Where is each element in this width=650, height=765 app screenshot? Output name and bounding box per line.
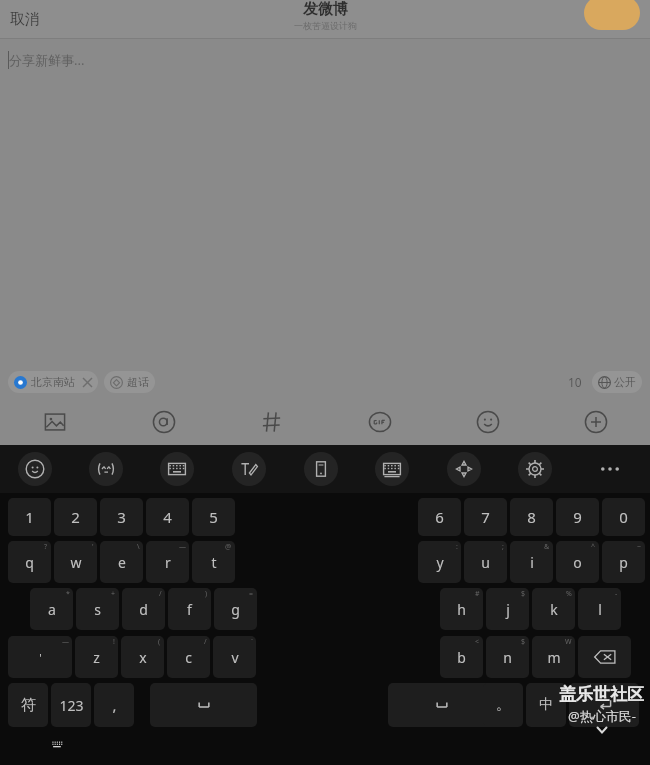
button[interactable]: s	[76, 588, 119, 630]
button[interactable]: r	[146, 541, 189, 583]
button[interactable]: k	[532, 588, 575, 630]
button[interactable]: 。	[483, 683, 523, 727]
button[interactable]: t	[192, 541, 235, 583]
staticText: ~	[637, 542, 642, 552]
button[interactable]: Mention	[109, 399, 218, 445]
button[interactable]: n	[486, 636, 529, 678]
button[interactable]: c	[167, 636, 210, 678]
button[interactable]: 取消	[0, 6, 50, 33]
staticText: k	[550, 600, 558, 619]
button[interactable]: i	[510, 541, 553, 583]
button[interactable]: g	[214, 588, 257, 630]
button[interactable]: Keyboard tool 5	[304, 452, 338, 486]
staticText: 超话	[127, 375, 149, 389]
button[interactable]: Space	[150, 683, 257, 727]
button[interactable]: j	[486, 588, 529, 630]
button[interactable]: 公开	[592, 371, 642, 393]
button[interactable]: Keyboard tool 7	[447, 452, 481, 486]
staticText: 符	[21, 696, 36, 715]
button[interactable]: More options	[592, 459, 628, 479]
button[interactable]: '	[8, 636, 72, 678]
staticText: `	[251, 637, 253, 647]
button[interactable]: Topic	[218, 399, 326, 445]
staticText: f	[187, 600, 192, 619]
button[interactable]: x	[121, 636, 164, 678]
button[interactable]: 4	[146, 498, 189, 536]
button[interactable]: f	[168, 588, 211, 630]
button[interactable]: Send	[584, 0, 640, 30]
staticText: j	[506, 600, 510, 619]
button[interactable]: 2	[54, 498, 97, 536]
button[interactable]: 超话	[104, 371, 155, 393]
staticText: y	[436, 553, 444, 572]
staticText: 6	[435, 507, 444, 527]
button[interactable]: p	[602, 541, 645, 583]
button[interactable]: l	[578, 588, 621, 630]
button[interactable]: 符	[8, 683, 48, 727]
button[interactable]: Photo	[0, 399, 109, 445]
button[interactable]: Keyboard tool 4	[232, 452, 266, 486]
staticText: c	[185, 648, 192, 667]
staticText: %	[566, 589, 572, 599]
staticText: n	[503, 648, 512, 667]
button[interactable]: Keyboard tool 2	[89, 452, 123, 486]
staticText: 9	[573, 507, 582, 527]
button[interactable]: Enter	[569, 683, 639, 727]
button[interactable]: 3	[100, 498, 143, 536]
button[interactable]: 7	[464, 498, 507, 536]
staticText: 一枚苦逼设计狗	[294, 20, 357, 31]
button[interactable]: b	[440, 636, 483, 678]
staticText: ?	[44, 542, 48, 552]
button[interactable]: Keyboard tool 3	[160, 452, 194, 486]
button[interactable]: m	[532, 636, 575, 678]
staticText: g	[231, 600, 240, 619]
button[interactable]: 北京南站	[8, 371, 98, 393]
button[interactable]: e	[100, 541, 143, 583]
button[interactable]: z	[75, 636, 118, 678]
staticText: $	[521, 637, 526, 647]
button[interactable]: u	[464, 541, 507, 583]
button[interactable]: o	[556, 541, 599, 583]
button[interactable]: 中	[526, 683, 566, 727]
staticText: 2	[71, 507, 80, 527]
button[interactable]: 0	[602, 498, 645, 536]
staticText: (	[158, 637, 161, 647]
button[interactable]: More	[542, 399, 650, 445]
staticText: $	[521, 589, 526, 599]
button[interactable]: y	[418, 541, 461, 583]
staticText: '	[92, 542, 94, 552]
button[interactable]: 9	[556, 498, 599, 536]
button[interactable]: h	[440, 588, 483, 630]
staticText: w	[70, 553, 82, 572]
button[interactable]: v	[213, 636, 256, 678]
staticText: v	[231, 648, 239, 667]
staticText: 10	[568, 374, 582, 390]
staticText: o	[573, 553, 582, 572]
button[interactable]: Hide keyboard	[42, 729, 72, 759]
staticText: d	[139, 600, 148, 619]
button[interactable]: 5	[192, 498, 235, 536]
staticText: \	[137, 542, 140, 552]
button[interactable]: Keyboard tool 8	[518, 452, 552, 486]
button[interactable]: 123	[51, 683, 91, 727]
button[interactable]: d	[122, 588, 165, 630]
staticText: 4	[163, 507, 172, 527]
button[interactable]: Keyboard tool 1	[18, 452, 52, 486]
button[interactable]: 1	[8, 498, 51, 536]
button[interactable]: 6	[418, 498, 461, 536]
button[interactable]: Backspace	[578, 636, 631, 678]
button[interactable]: w	[54, 541, 97, 583]
button[interactable]: GIF	[326, 399, 434, 445]
button[interactable]: Keyboard tool 6	[375, 452, 409, 486]
staticText: /	[159, 589, 162, 599]
button[interactable]: q	[8, 541, 51, 583]
button[interactable]: Space	[388, 683, 495, 727]
button[interactable]: Emoji	[434, 399, 542, 445]
button[interactable]: 8	[510, 498, 553, 536]
button[interactable]: ,	[94, 683, 134, 727]
staticText: t	[211, 553, 217, 572]
button[interactable]: a	[30, 588, 73, 630]
staticText: 8	[527, 507, 536, 527]
staticText: u	[481, 553, 490, 572]
staticText: !	[113, 637, 115, 647]
